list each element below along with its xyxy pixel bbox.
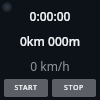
button[interactable]: STOP	[52, 79, 96, 97]
staticText: START	[14, 83, 38, 93]
button[interactable]: START	[4, 79, 48, 97]
staticText: 0:00:00	[0, 8, 100, 24]
staticText: 0 km/h	[0, 58, 100, 74]
staticText: 0km 000m	[0, 33, 100, 49]
other: Status indicator	[2, 2, 12, 12]
staticText: STOP	[64, 83, 84, 93]
